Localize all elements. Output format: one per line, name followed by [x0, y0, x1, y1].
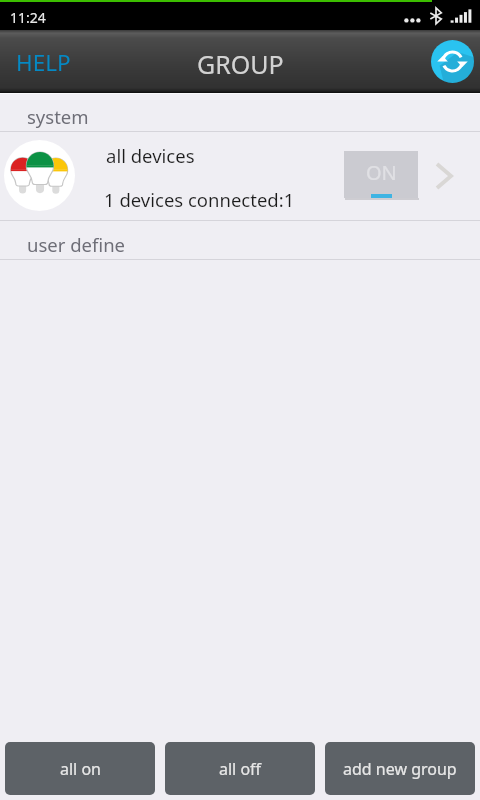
staticText: system	[27, 104, 89, 129]
staticText: add new group	[343, 758, 457, 780]
staticText: all devices	[106, 143, 195, 168]
staticText: 1 devices connected:1	[104, 187, 295, 212]
staticText: 11:24	[10, 8, 46, 27]
staticText: user define	[27, 232, 125, 257]
button[interactable]: all off	[165, 742, 315, 795]
staticText: ON	[366, 159, 397, 186]
button[interactable]: add new group	[325, 742, 475, 795]
staticText: GROUP	[197, 47, 284, 81]
staticText: all off	[219, 758, 262, 780]
button[interactable]: Refresh	[431, 40, 474, 83]
button[interactable]: HELP	[0, 30, 87, 93]
button[interactable]: all on	[5, 742, 155, 795]
other: Details	[424, 148, 466, 204]
button[interactable]: all devices	[0, 132, 480, 221]
staticText: HELP	[16, 47, 71, 78]
button[interactable]: ON	[344, 151, 418, 200]
staticText: all on	[60, 758, 101, 780]
